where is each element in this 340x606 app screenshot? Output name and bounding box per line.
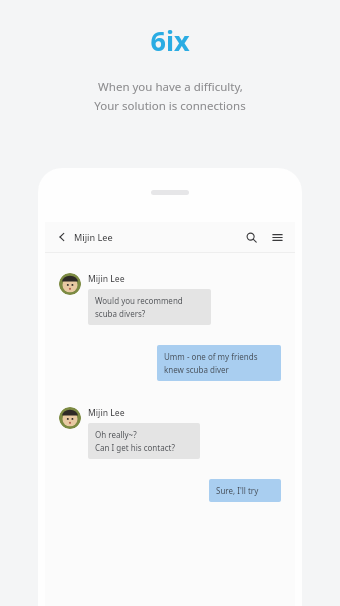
button[interactable]: Would you recommend: [88, 289, 211, 325]
staticText: Would you recommend: [95, 295, 183, 306]
staticText: Umm - one of my friends: [164, 351, 258, 362]
staticText: When you have a difficulty,: [98, 79, 243, 95]
staticText: knew scuba diver: [164, 364, 229, 375]
staticText: Mijin Lee: [88, 407, 125, 419]
staticText: 6ix: [150, 22, 190, 59]
staticText: Mijin Lee: [74, 231, 113, 243]
button[interactable]: Back: [54, 229, 70, 245]
staticText: Can I get his contact?: [95, 442, 175, 453]
button[interactable]: Sure, I'll try: [209, 479, 281, 502]
staticText: Mijin Lee: [88, 273, 125, 285]
button[interactable]: Oh really~?: [88, 423, 200, 459]
button[interactable]: Menu: [268, 228, 286, 246]
staticText: Sure, I'll try: [216, 485, 259, 496]
button[interactable]: Search: [242, 228, 260, 246]
staticText: Your solution is connections: [94, 98, 246, 114]
staticText: Oh really~?: [95, 429, 137, 440]
button[interactable]: Umm - one of my friends: [157, 345, 281, 381]
staticText: scuba divers?: [95, 308, 146, 319]
